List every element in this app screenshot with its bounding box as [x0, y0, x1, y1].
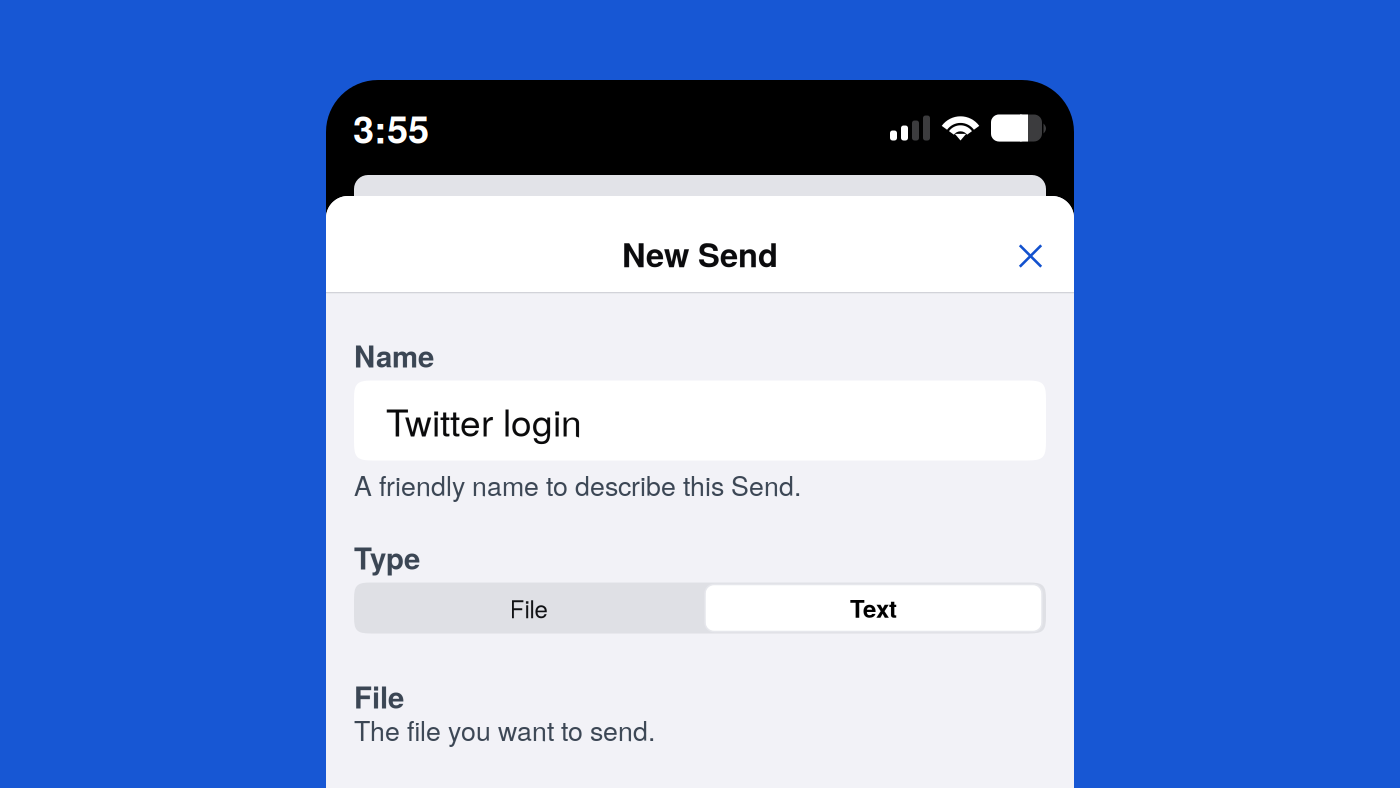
staticText: The file you want to send.: [354, 710, 655, 749]
staticText: 3:55: [353, 101, 429, 155]
staticText: Name: [354, 334, 434, 376]
staticText: A friendly name to describe this Send.: [354, 465, 801, 504]
button[interactable]: Text: [703, 582, 1044, 633]
staticText: File: [509, 591, 547, 625]
staticText: File: [354, 675, 404, 717]
staticText: Text: [850, 591, 897, 625]
staticText: Twitter login: [386, 394, 582, 447]
staticText: New Send: [622, 231, 778, 277]
staticText: Type: [354, 536, 420, 578]
button[interactable]: Close: [1002, 228, 1058, 284]
button[interactable]: File: [354, 582, 703, 633]
